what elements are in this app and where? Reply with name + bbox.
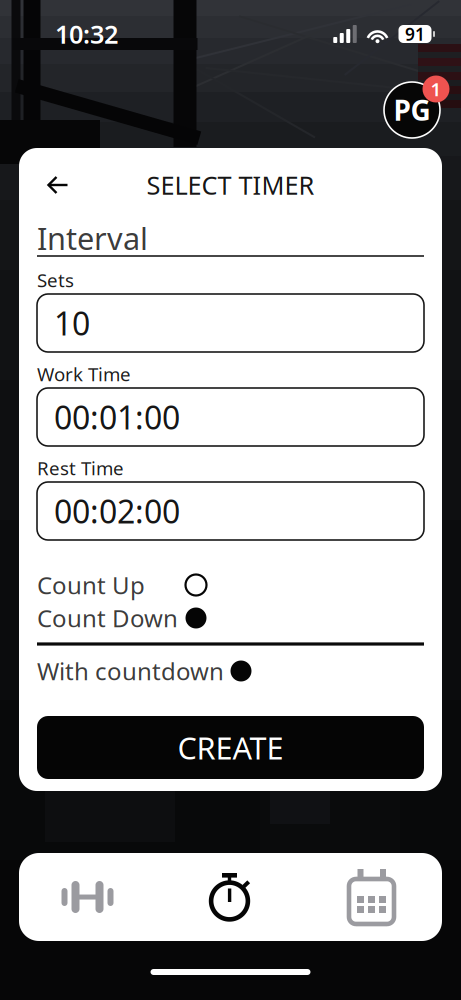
button[interactable]: Back (37, 165, 79, 205)
staticText: 00:01:00 (54, 396, 180, 438)
staticText: 10:32 (55, 17, 118, 51)
button[interactable]: Workouts (27, 853, 147, 941)
staticText: Sets (37, 268, 74, 292)
staticText: PG (393, 91, 430, 129)
staticText: 10 (54, 302, 90, 344)
button[interactable]: Count Down (37, 602, 424, 634)
staticText: Rest Time (37, 456, 124, 480)
button[interactable]: CREATE (37, 716, 424, 779)
button[interactable]: Timers (171, 853, 291, 941)
staticText: Count Down (37, 602, 178, 634)
staticText: 91 (405, 22, 425, 45)
button[interactable]: Profile (380, 70, 452, 140)
button[interactable]: With countdown (37, 654, 424, 688)
staticText: Count Up (37, 569, 145, 601)
staticText: Interval (37, 218, 148, 258)
staticText: CREATE (177, 727, 283, 768)
staticText: With countdown (37, 655, 224, 687)
staticText: Work Time (37, 362, 131, 386)
button[interactable]: Count Up (37, 569, 424, 601)
staticText: SELECT TIMER (146, 168, 314, 202)
button[interactable]: Calendar (311, 853, 431, 941)
staticText: 00:02:00 (54, 490, 180, 532)
button[interactable]: Interval (37, 221, 424, 257)
staticText: 1 (430, 77, 441, 101)
